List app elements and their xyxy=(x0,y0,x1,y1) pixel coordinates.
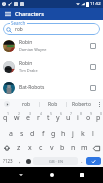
button[interactable]: Select Robin xyxy=(86,35,100,56)
button[interactable]: m xyxy=(79,141,90,155)
button[interactable]: r xyxy=(33,109,43,126)
staticText: s xyxy=(20,129,24,139)
staticText: k xyxy=(81,129,85,139)
staticText: o xyxy=(86,113,91,123)
button[interactable]: ?123 xyxy=(0,155,15,167)
button[interactable]: Recent apps xyxy=(73,167,91,183)
button[interactable]: Space xyxy=(33,157,78,165)
staticText: 4 xyxy=(40,111,43,116)
staticText: GB · EN xyxy=(49,159,63,164)
staticText: 0 xyxy=(100,111,103,116)
button[interactable]: rob xyxy=(3,23,100,35)
staticText: t xyxy=(47,113,50,123)
button[interactable]: Select Robin xyxy=(86,56,100,77)
button[interactable]: More options xyxy=(95,99,103,109)
staticText: Robin xyxy=(19,39,33,46)
staticText: rob xyxy=(22,101,31,108)
button[interactable]: h xyxy=(58,126,68,141)
staticText: Roberto xyxy=(72,101,91,108)
staticText: Bat-Robots xyxy=(19,84,45,91)
button[interactable]: w xyxy=(11,109,22,126)
button[interactable]: c xyxy=(35,141,46,155)
staticText: m xyxy=(81,143,88,153)
button[interactable]: p xyxy=(93,109,103,126)
button[interactable]: o xyxy=(83,109,93,126)
button[interactable]: Enter xyxy=(86,157,101,165)
button[interactable]: i xyxy=(73,109,83,126)
button[interactable]: Back xyxy=(12,167,30,183)
staticText: i xyxy=(77,113,79,123)
staticText: Robin xyxy=(19,60,33,67)
button[interactable]: y xyxy=(53,109,63,126)
button[interactable]: z xyxy=(13,141,24,155)
button[interactable]: Open navigation menu xyxy=(0,8,15,20)
staticText: x xyxy=(28,143,32,153)
staticText: a xyxy=(9,129,13,139)
staticText: Search xyxy=(11,20,26,26)
button[interactable]: rob xyxy=(13,99,39,109)
staticText: l xyxy=(92,129,94,139)
staticText: 9 xyxy=(90,111,93,116)
staticText: e xyxy=(26,113,30,123)
button[interactable]: d xyxy=(27,126,38,141)
staticText: Damian Wayne xyxy=(19,47,47,52)
staticText: n xyxy=(71,143,76,153)
button[interactable]: a xyxy=(5,126,16,141)
staticText: 5 xyxy=(50,111,53,116)
staticText: w xyxy=(14,113,20,123)
button[interactable]: u xyxy=(63,109,73,126)
button[interactable]: e xyxy=(22,109,33,126)
staticText: 0 xyxy=(3,2,5,6)
button[interactable]: Rob xyxy=(40,99,66,109)
staticText: Rob xyxy=(48,101,58,108)
button[interactable]: f xyxy=(38,126,48,141)
button[interactable]: l xyxy=(88,126,98,141)
staticText: rob xyxy=(15,26,23,33)
button[interactable]: Expand suggestions xyxy=(0,99,13,109)
staticText: r xyxy=(37,113,40,123)
staticText: b xyxy=(60,143,65,153)
staticText: u xyxy=(66,113,71,123)
button[interactable]: Select Bat-Robots xyxy=(86,77,100,98)
button[interactable]: Robin xyxy=(0,56,103,77)
button[interactable]: Shift xyxy=(0,141,13,155)
staticText: 7 xyxy=(70,111,73,116)
button[interactable]: Roberto xyxy=(67,99,95,109)
staticText: 11:52 xyxy=(90,1,101,7)
button[interactable]: b xyxy=(57,141,68,155)
staticText: 1 xyxy=(7,111,10,116)
staticText: z xyxy=(17,143,21,153)
button[interactable]: Home xyxy=(43,167,61,183)
staticText: g xyxy=(51,129,56,139)
staticText: v xyxy=(50,143,54,153)
button[interactable]: q xyxy=(0,109,11,126)
button[interactable]: Emoji xyxy=(24,155,33,167)
button[interactable]: k xyxy=(78,126,88,141)
button[interactable]: j xyxy=(68,126,78,141)
staticText: Tim Drake xyxy=(19,68,38,73)
staticText: . xyxy=(81,157,83,165)
button[interactable]: x xyxy=(24,141,35,155)
staticText: 6 xyxy=(60,111,63,116)
staticText: y xyxy=(56,113,60,123)
button[interactable]: Backspace xyxy=(90,141,103,155)
staticText: q xyxy=(3,113,8,123)
button[interactable]: n xyxy=(68,141,79,155)
staticText: c xyxy=(39,143,43,153)
button[interactable]: g xyxy=(48,126,58,141)
button[interactable]: t xyxy=(43,109,53,126)
button[interactable]: v xyxy=(46,141,57,155)
staticText: d xyxy=(30,129,35,139)
staticText: , xyxy=(19,157,21,165)
staticText: 3 xyxy=(29,111,32,116)
button[interactable]: Period xyxy=(78,155,86,167)
staticText: Characters xyxy=(15,10,44,18)
staticText: ?123 xyxy=(3,158,13,164)
staticText: f xyxy=(42,129,45,139)
staticText: h xyxy=(61,129,66,139)
button[interactable]: Bat-Robots xyxy=(0,77,103,98)
button[interactable]: Comma xyxy=(15,155,24,167)
staticText: 8 xyxy=(80,111,83,116)
button[interactable]: Robin xyxy=(0,35,103,56)
button[interactable]: s xyxy=(16,126,27,141)
